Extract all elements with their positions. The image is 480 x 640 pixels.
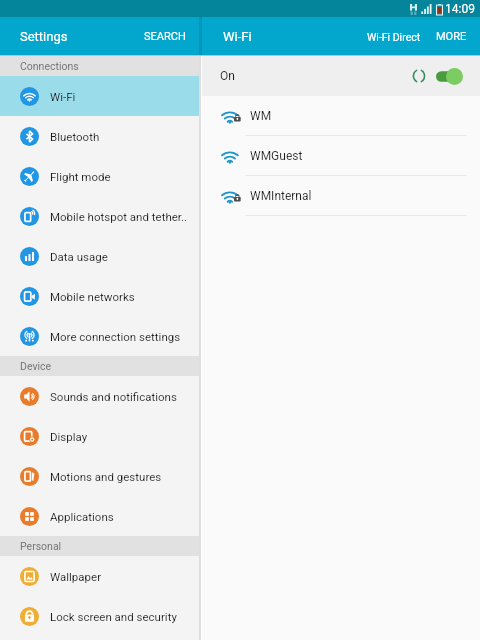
staticText: Lock screen and security — [50, 610, 177, 623]
staticText: MORE — [436, 30, 467, 43]
button[interactable]: Data usage — [0, 236, 199, 276]
button[interactable]: WMInternal — [202, 176, 480, 216]
staticText: SEARCH — [144, 30, 186, 43]
staticText: Display — [50, 430, 88, 443]
button[interactable]: Wi-Fi — [0, 76, 199, 116]
staticText: Wi-Fi — [50, 90, 76, 103]
button[interactable]: Bluetooth — [0, 116, 199, 156]
button[interactable]: Mobile networks — [0, 276, 199, 316]
staticText: Data usage — [50, 250, 108, 263]
button[interactable]: Display — [0, 416, 199, 456]
staticText: Sounds and notifications — [50, 390, 177, 403]
button[interactable]: Applications — [0, 496, 199, 536]
staticText: WMGuest — [250, 149, 303, 163]
button[interactable]: Wi-Fi Direct — [358, 21, 428, 53]
staticText: Connections — [20, 60, 79, 72]
button[interactable]: Motions and gestures — [0, 456, 199, 496]
staticText: Motions and gestures — [50, 470, 162, 483]
button[interactable]: MORE — [428, 20, 480, 53]
staticText: Device — [20, 360, 52, 372]
button[interactable]: WMGuest — [202, 136, 480, 176]
staticText: Mobile networks — [50, 290, 135, 303]
button[interactable]: SEARCH — [130, 20, 199, 53]
staticText: Bluetooth — [50, 130, 100, 143]
staticText: Wi-Fi Direct — [367, 31, 421, 43]
staticText: Wi-Fi — [223, 29, 252, 44]
staticText: Personal — [20, 540, 62, 552]
button[interactable]: More connection settings — [0, 316, 199, 356]
button[interactable]: Sounds and notifications — [0, 376, 199, 416]
staticText: Applications — [50, 510, 114, 523]
staticText: Settings — [20, 29, 68, 44]
staticText: 14:09 — [445, 2, 475, 16]
staticText: Mobile hotspot and tether.. — [50, 210, 188, 223]
button[interactable]: WM — [202, 96, 480, 136]
button[interactable]: Lock screen and security — [0, 596, 199, 636]
other: Scanning — [412, 69, 426, 83]
staticText: Flight mode — [50, 170, 111, 183]
staticText: More connection settings — [50, 330, 181, 343]
button[interactable]: On — [202, 56, 480, 96]
button[interactable]: Wallpaper — [0, 556, 199, 596]
staticText: WMInternal — [250, 189, 312, 203]
button[interactable]: Wi-Fi toggle — [436, 68, 463, 85]
button[interactable]: Flight mode — [0, 156, 199, 196]
staticText: Wallpaper — [50, 570, 102, 583]
staticText: On — [220, 69, 235, 83]
button[interactable]: Mobile hotspot and tether.. — [0, 196, 199, 236]
staticText: WM — [250, 109, 272, 123]
